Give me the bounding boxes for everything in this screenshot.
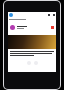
button[interactable]: [8, 24, 56, 30]
button[interactable]: Share: [34, 61, 38, 65]
button[interactable]: Like: [27, 61, 31, 65]
button[interactable]: Notification: [9, 13, 13, 17]
